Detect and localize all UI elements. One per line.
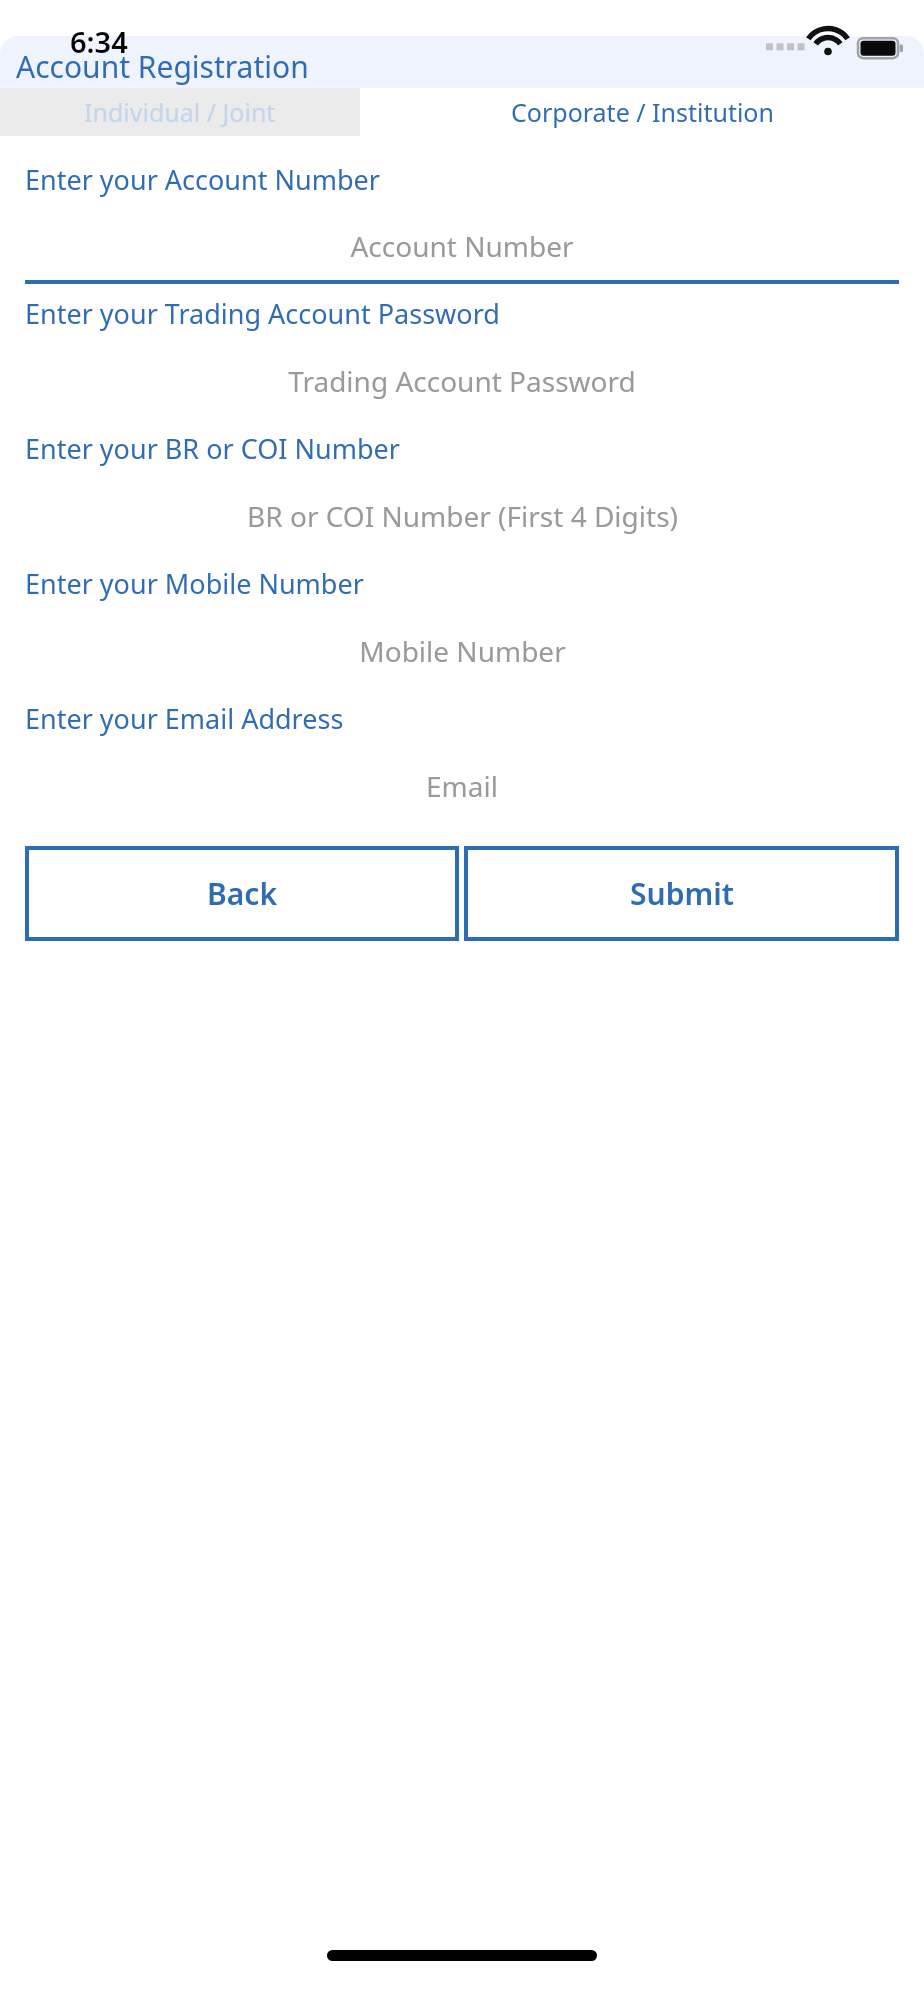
staticText: 6:34 bbox=[70, 22, 128, 61]
button[interactable]: Individual / Joint bbox=[0, 88, 360, 136]
button[interactable]: Corporate / Institution bbox=[360, 88, 924, 136]
staticText: Enter your Mobile Number bbox=[25, 565, 364, 602]
staticText: Account Registration bbox=[16, 46, 309, 87]
staticText: Trading Account Password bbox=[288, 362, 636, 400]
staticText: Individual / Joint bbox=[84, 95, 276, 129]
staticText: Enter your Account Number bbox=[25, 161, 380, 198]
staticText: Enter your Trading Account Password bbox=[25, 295, 500, 332]
staticText: BR or COI Number (First 4 Digits) bbox=[247, 497, 678, 535]
staticText: Enter your BR or COI Number bbox=[25, 430, 400, 467]
button[interactable]: Back bbox=[25, 846, 459, 941]
staticText: Enter your Email Address bbox=[25, 700, 344, 737]
button[interactable]: Enter your BR or COI Number bbox=[0, 419, 924, 554]
button[interactable]: Enter your Email Address bbox=[0, 689, 924, 824]
button[interactable]: Enter your Trading Account Password bbox=[0, 284, 924, 419]
staticText: Mobile Number bbox=[359, 632, 566, 670]
staticText: Submit bbox=[630, 873, 734, 914]
staticText: Back bbox=[207, 873, 278, 914]
button[interactable]: Enter your Account Number bbox=[0, 150, 924, 284]
staticText: Corporate / Institution bbox=[511, 95, 774, 129]
button[interactable]: Enter your Mobile Number bbox=[0, 554, 924, 689]
staticText: Email bbox=[426, 767, 498, 805]
staticText: Account Number bbox=[350, 227, 574, 265]
button[interactable]: Submit bbox=[464, 846, 899, 941]
